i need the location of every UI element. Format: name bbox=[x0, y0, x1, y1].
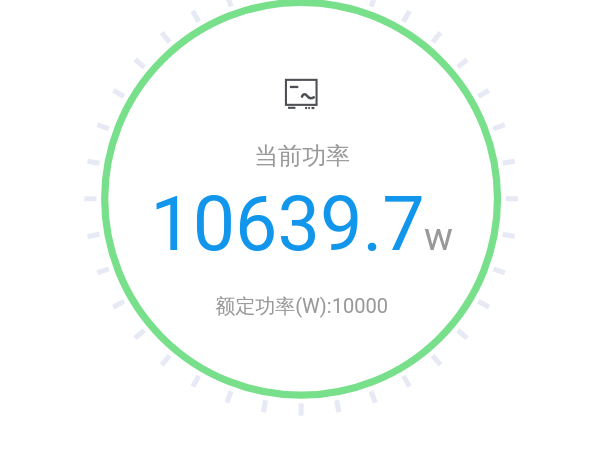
button[interactable]: Power meter device bbox=[278, 72, 324, 116]
staticText: 额定功率(W):10000 bbox=[215, 294, 388, 319]
staticText: 当前功率 bbox=[254, 141, 350, 171]
staticText: 10639.7 bbox=[150, 180, 425, 268]
button[interactable]: Current power gauge bbox=[108, 6, 494, 392]
staticText: w bbox=[424, 214, 453, 256]
